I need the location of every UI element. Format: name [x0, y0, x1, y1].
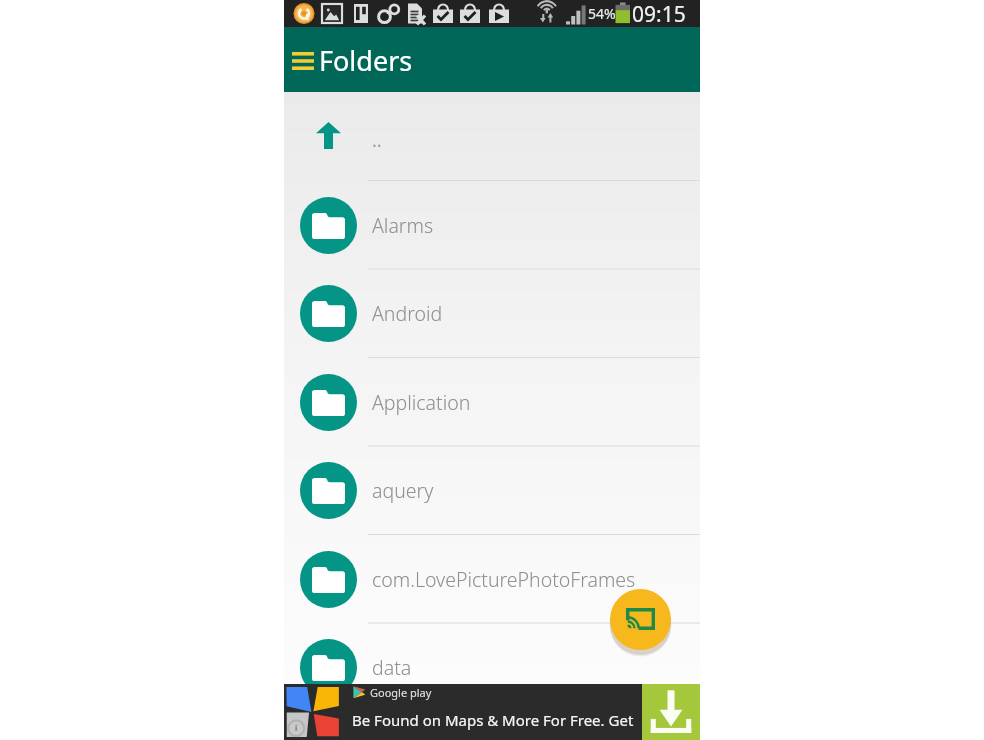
staticText: Be Found on Maps & More For Free. Get: [352, 710, 634, 730]
staticText: Folders: [319, 42, 413, 79]
button[interactable]: Menu: [286, 39, 320, 81]
staticText: com.LovePicturePhotoFrames: [372, 566, 636, 593]
button[interactable]: aquery: [284, 446, 700, 535]
button[interactable]: Install: [642, 684, 700, 740]
staticText: Google play: [370, 685, 432, 700]
button[interactable]: Cast: [610, 589, 671, 650]
button[interactable]: ..: [284, 92, 700, 181]
staticText: aquery: [372, 477, 434, 504]
staticText: data: [372, 654, 412, 681]
button[interactable]: Application: [284, 358, 700, 447]
button[interactable]: com.LovePicturePhotoFrames: [284, 535, 700, 624]
staticText: 09:15: [632, 0, 686, 27]
button[interactable]: data: [284, 623, 700, 712]
staticText: ..: [372, 128, 382, 153]
staticText: Alarms: [372, 212, 434, 239]
staticText: 54%: [588, 4, 616, 23]
staticText: Android: [372, 300, 443, 327]
button[interactable]: Android: [284, 269, 700, 358]
button[interactable]: Google play: [284, 684, 700, 740]
staticText: Application: [372, 389, 471, 416]
button[interactable]: Alarms: [284, 181, 700, 270]
